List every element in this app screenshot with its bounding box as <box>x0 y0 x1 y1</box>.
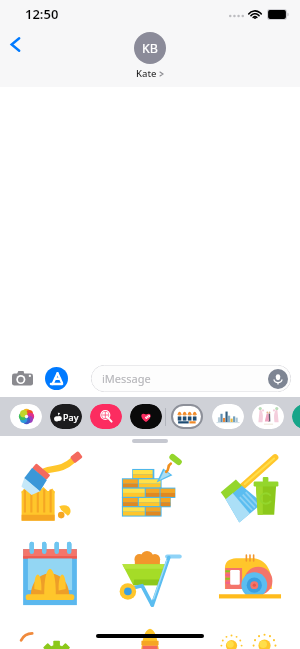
button[interactable] <box>17 540 83 614</box>
button[interactable]: iMessage <box>91 365 291 392</box>
staticText: Kate <box>136 67 157 80</box>
button[interactable] <box>117 450 183 524</box>
staticText: KB <box>142 40 158 57</box>
button[interactable] <box>117 540 183 614</box>
button[interactable]: Camera <box>12 370 33 388</box>
button[interactable] <box>17 627 83 649</box>
button[interactable]: App Store <box>45 367 68 390</box>
button[interactable] <box>90 404 122 429</box>
button[interactable]: Dictate <box>268 369 288 389</box>
button[interactable] <box>17 450 83 524</box>
staticText: 12:50 <box>25 5 59 23</box>
button[interactable]: KB <box>134 32 166 80</box>
button[interactable] <box>217 450 283 524</box>
button[interactable]: Pay <box>50 404 82 429</box>
button[interactable] <box>212 404 244 429</box>
staticText: iMessage <box>102 371 151 386</box>
button[interactable] <box>217 627 283 649</box>
button[interactable] <box>10 404 42 429</box>
button[interactable] <box>252 404 284 429</box>
button[interactable] <box>171 404 203 429</box>
button[interactable] <box>130 404 162 429</box>
button[interactable] <box>292 404 300 429</box>
staticText: Pay <box>63 411 79 423</box>
button[interactable] <box>217 540 283 614</box>
button[interactable]: Back <box>3 31 30 58</box>
button[interactable] <box>117 627 183 649</box>
